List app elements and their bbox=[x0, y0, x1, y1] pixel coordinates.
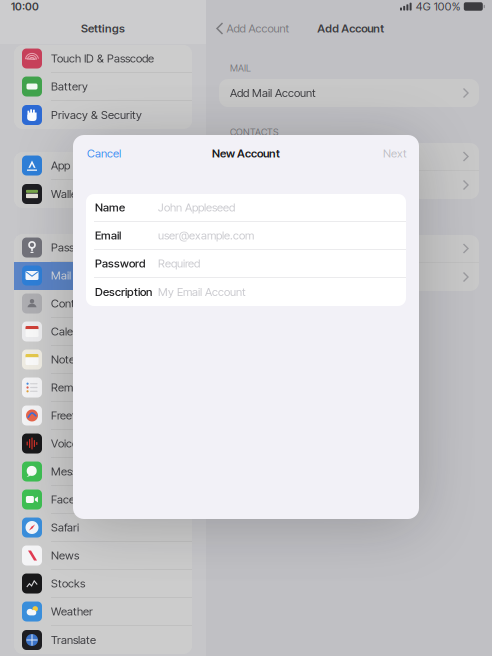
staticText: Freeform bbox=[51, 409, 94, 422]
button[interactable]: Touch ID & Passcode bbox=[14, 45, 192, 73]
button[interactable]: Safari bbox=[14, 514, 192, 542]
staticText: My Email Account bbox=[158, 285, 246, 299]
staticText: Translate bbox=[51, 633, 96, 647]
staticText: Touch ID & Passcode bbox=[51, 52, 154, 65]
button[interactable]: Add Mail Account bbox=[219, 79, 479, 107]
button[interactable] bbox=[219, 263, 479, 291]
button[interactable]: Add Account bbox=[206, 13, 289, 44]
staticText: Next bbox=[383, 147, 407, 160]
staticText: Messages bbox=[51, 465, 100, 478]
staticText: Battery bbox=[51, 80, 88, 93]
staticText: Name bbox=[95, 201, 125, 214]
staticText: Voice Memos bbox=[51, 437, 117, 450]
staticText: Stocks bbox=[51, 577, 85, 590]
button[interactable]: Cancel bbox=[73, 135, 135, 171]
staticText: Email bbox=[95, 229, 121, 242]
staticText: Required bbox=[158, 257, 200, 270]
staticText: Contacts bbox=[51, 297, 95, 310]
staticText: Add Account bbox=[226, 22, 289, 35]
staticText: 4G 100% bbox=[413, 0, 464, 13]
staticText: Weather bbox=[51, 605, 93, 618]
staticText: Safari bbox=[51, 521, 79, 534]
button[interactable] bbox=[219, 171, 479, 199]
staticText: user@example.com bbox=[158, 229, 254, 242]
button[interactable]: Messages bbox=[14, 458, 192, 486]
button[interactable]: Freeform bbox=[14, 402, 192, 430]
staticText: Wallet bbox=[51, 187, 81, 201]
staticText: Settings bbox=[81, 22, 125, 35]
staticText: Add Mail Account bbox=[230, 86, 316, 100]
button[interactable]: Contacts bbox=[14, 290, 192, 318]
button[interactable]: Next bbox=[371, 135, 419, 171]
button[interactable]: Wallet bbox=[14, 180, 192, 208]
button[interactable]: Reminders bbox=[14, 374, 192, 402]
staticText: Add Account bbox=[317, 22, 384, 35]
staticText: Mail bbox=[51, 269, 71, 282]
staticText: MAIL bbox=[230, 62, 251, 74]
staticText: CONTACTS bbox=[230, 126, 279, 138]
button[interactable]: Privacy & Security bbox=[14, 101, 192, 129]
button[interactable]: Calendar bbox=[14, 318, 192, 346]
button[interactable] bbox=[219, 143, 479, 171]
staticText: Notes bbox=[51, 353, 80, 366]
button[interactable]: Translate bbox=[14, 626, 192, 654]
staticText: News bbox=[51, 549, 79, 562]
button[interactable]: News bbox=[14, 542, 192, 570]
staticText: FaceTime bbox=[51, 493, 98, 506]
staticText: Calendar bbox=[51, 325, 95, 338]
button[interactable] bbox=[219, 235, 479, 263]
button[interactable]: Stocks bbox=[14, 570, 192, 598]
button[interactable]: Mail bbox=[14, 262, 192, 290]
button[interactable]: Battery bbox=[14, 73, 192, 101]
staticText: Reminders bbox=[51, 381, 102, 394]
button[interactable]: Notes bbox=[14, 346, 192, 374]
staticText: New Account bbox=[212, 147, 280, 160]
staticText: Cancel bbox=[87, 147, 121, 160]
staticText: 10:00 bbox=[11, 0, 39, 13]
staticText: John Appleseed bbox=[158, 201, 235, 214]
button[interactable]: Weather bbox=[14, 598, 192, 626]
staticText: Passwords bbox=[51, 241, 102, 254]
staticText: App Store bbox=[51, 159, 99, 172]
button[interactable]: Voice Memos bbox=[14, 430, 192, 458]
staticText: Password bbox=[95, 257, 146, 270]
button[interactable]: App Store bbox=[14, 152, 192, 180]
staticText: Privacy & Security bbox=[51, 108, 142, 122]
button[interactable]: FaceTime bbox=[14, 486, 192, 514]
button[interactable]: Passwords bbox=[14, 234, 192, 262]
staticText: Description bbox=[95, 285, 152, 299]
